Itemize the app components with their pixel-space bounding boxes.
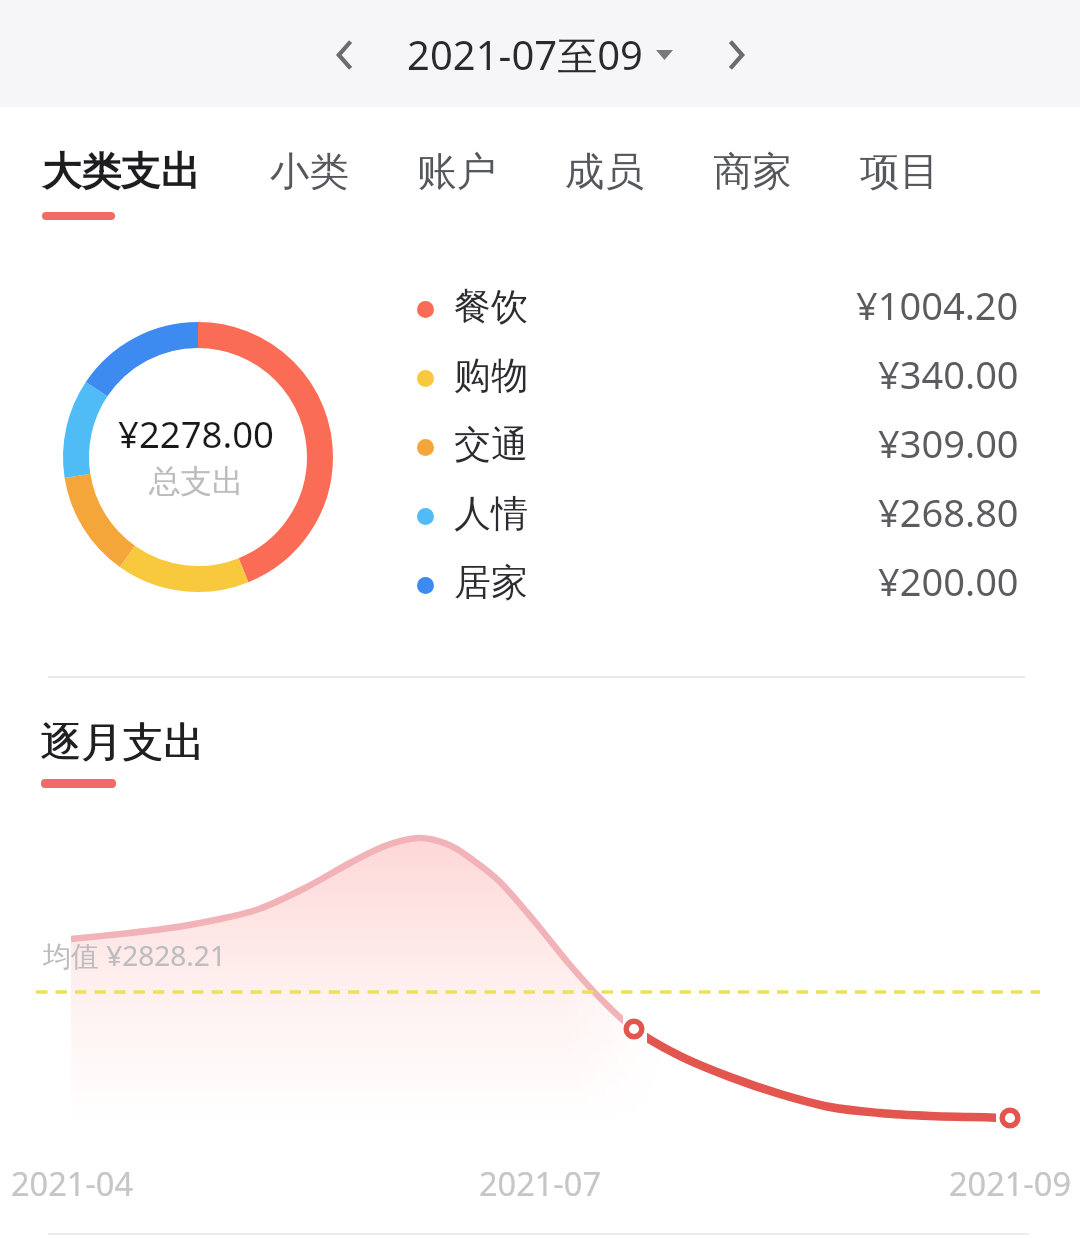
- staticText: 交通: [454, 421, 528, 468]
- button[interactable]: 项目: [860, 138, 939, 206]
- staticText: 账户: [417, 147, 496, 197]
- button[interactable]: Previous period: [305, 16, 383, 94]
- button[interactable]: 购物: [417, 343, 1016, 412]
- button[interactable]: 成员: [565, 138, 644, 206]
- staticText: 商家: [713, 147, 792, 197]
- button[interactable]: 2021-07至09: [407, 15, 673, 93]
- staticText: 小类: [270, 147, 349, 197]
- staticText: 项目: [860, 147, 939, 197]
- staticText: 逐月支出: [40, 717, 204, 767]
- button[interactable]: 商家: [713, 138, 792, 206]
- button[interactable]: 居家: [417, 550, 1016, 619]
- staticText: 大类支出: [42, 147, 200, 197]
- button[interactable]: 交通: [417, 412, 1016, 481]
- staticText: ¥268.80: [878, 486, 1019, 538]
- staticText: 均值 ¥2828.21: [43, 936, 226, 974]
- staticText: 2021-04: [11, 1161, 134, 1205]
- button[interactable]: 大类支出: [42, 138, 200, 206]
- staticText: ¥2278.00: [118, 409, 274, 459]
- staticText: ¥1004.20: [856, 279, 1019, 331]
- button[interactable]: 人情: [417, 481, 1016, 550]
- button[interactable]: Next period: [698, 16, 776, 94]
- staticText: 购物: [454, 352, 528, 399]
- button[interactable]: 账户: [417, 138, 496, 206]
- staticText: 2021-07: [0, 1161, 1080, 1205]
- staticText: ¥200.00: [878, 555, 1019, 607]
- staticText: 居家: [454, 559, 528, 606]
- staticText: 成员: [565, 147, 644, 197]
- staticText: ¥309.00: [878, 417, 1019, 469]
- button[interactable]: 小类: [270, 138, 349, 206]
- staticText: 人情: [454, 490, 528, 537]
- staticText: 逐月支出: [41, 717, 205, 767]
- button[interactable]: 餐饮: [417, 274, 1016, 343]
- staticText: 餐饮: [454, 283, 528, 330]
- button[interactable]: 逐月支出: [40, 717, 204, 767]
- button[interactable]: Expense categories pie chart: [50, 309, 346, 605]
- staticText: 2021-09: [0, 1161, 1071, 1205]
- staticText: ¥340.00: [878, 348, 1019, 400]
- staticText: 2021-07至09: [407, 27, 643, 82]
- staticText: 总支出: [149, 462, 244, 502]
